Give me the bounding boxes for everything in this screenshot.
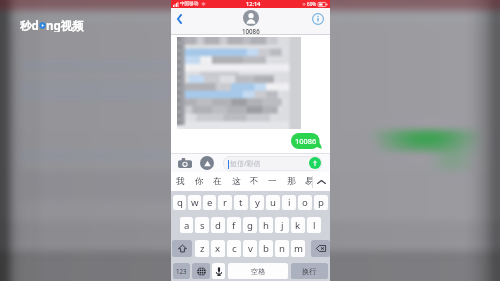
- button[interactable]: 一: [263, 172, 281, 191]
- staticText: 中国移动: [180, 1, 199, 7]
- button[interactable]: y: [250, 195, 264, 210]
- button[interactable]: e: [203, 195, 216, 210]
- staticText: u: [270, 196, 276, 209]
- staticText: 那: [287, 176, 296, 187]
- staticText: ng视频: [46, 18, 84, 32]
- button[interactable]: Contact info: [308, 8, 328, 29]
- button[interactable]: 10086: [242, 10, 260, 35]
- staticText: 这: [232, 176, 241, 187]
- staticText: n: [279, 242, 285, 255]
- staticText: k: [295, 219, 301, 232]
- button[interactable]: 换行: [291, 263, 328, 279]
- staticText: e: [207, 196, 213, 209]
- staticText: h: [263, 219, 269, 232]
- button[interactable]: l: [307, 217, 321, 233]
- staticText: 易: [305, 176, 314, 187]
- staticText: 换行: [302, 267, 317, 276]
- button[interactable]: 不: [245, 172, 263, 191]
- staticText: 60%: [307, 1, 317, 7]
- button[interactable]: u: [266, 195, 280, 210]
- staticText: m: [294, 242, 303, 255]
- staticText: 你: [195, 176, 204, 187]
- staticText: z: [200, 242, 205, 255]
- button[interactable]: 易: [300, 172, 318, 191]
- button[interactable]: Switch keyboard: [192, 263, 210, 279]
- button[interactable]: w: [188, 195, 201, 210]
- button[interactable]: App Store: [200, 156, 214, 170]
- staticText: w: [191, 196, 199, 209]
- staticText: 10086: [242, 27, 260, 35]
- staticText: i: [288, 196, 291, 209]
- button[interactable]: f: [227, 217, 241, 233]
- button[interactable]: Shift: [172, 240, 192, 257]
- staticText: o: [302, 196, 308, 209]
- button[interactable]: 这: [227, 172, 245, 191]
- button[interactable]: 我: [171, 172, 189, 191]
- button[interactable]: 123: [173, 263, 190, 279]
- button[interactable]: Send: [309, 157, 321, 169]
- button[interactable]: More candidates: [312, 172, 330, 191]
- staticText: 一: [268, 176, 277, 187]
- button[interactable]: 空格: [228, 263, 288, 279]
- staticText: 10086: [295, 136, 317, 146]
- button[interactable]: [177, 37, 301, 129]
- button[interactable]: j: [275, 217, 289, 233]
- staticText: t: [239, 196, 243, 209]
- button[interactable]: 你: [190, 172, 208, 191]
- staticText: s: [200, 219, 205, 232]
- button[interactable]: h: [259, 217, 273, 233]
- button[interactable]: o: [298, 195, 312, 210]
- button[interactable]: r: [218, 195, 232, 210]
- button[interactable]: q: [173, 195, 186, 210]
- button[interactable]: m: [291, 240, 305, 257]
- button[interactable]: 在: [208, 172, 226, 191]
- button[interactable]: g: [243, 217, 257, 233]
- button[interactable]: Back: [171, 8, 187, 30]
- staticText: c: [232, 242, 237, 255]
- staticText: 在: [213, 176, 222, 187]
- staticText: q: [177, 196, 183, 209]
- staticText: l: [313, 219, 316, 232]
- staticText: j: [281, 219, 284, 232]
- staticText: f: [232, 219, 236, 232]
- staticText: a: [184, 219, 190, 232]
- staticText: 空格: [251, 267, 266, 276]
- button[interactable]: k: [291, 217, 305, 233]
- button[interactable]: 短信/彩信: [223, 156, 322, 171]
- staticText: 不: [250, 176, 259, 187]
- button[interactable]: 10086: [291, 133, 320, 149]
- staticText: b: [263, 242, 269, 255]
- staticText: d: [215, 219, 221, 232]
- staticText: v: [248, 242, 253, 255]
- button[interactable]: c: [227, 240, 241, 257]
- staticText: x: [215, 242, 221, 255]
- staticText: 秒d: [20, 18, 39, 32]
- button[interactable]: i: [282, 195, 296, 210]
- button[interactable]: s: [195, 217, 209, 233]
- staticText: 12:14: [246, 0, 261, 8]
- button[interactable]: Backspace: [311, 240, 330, 257]
- staticText: r: [223, 196, 227, 209]
- button[interactable]: z: [195, 240, 209, 257]
- staticText: g: [247, 219, 253, 232]
- staticText: p: [318, 196, 324, 209]
- button[interactable]: a: [180, 217, 193, 233]
- button[interactable]: Dictation: [212, 263, 225, 279]
- button[interactable]: x: [211, 240, 225, 257]
- button[interactable]: t: [234, 195, 248, 210]
- button[interactable]: v: [243, 240, 257, 257]
- staticText: 123: [176, 267, 187, 275]
- button[interactable]: b: [259, 240, 273, 257]
- staticText: 短信/彩信: [230, 159, 261, 169]
- button[interactable]: Camera: [178, 157, 192, 169]
- button[interactable]: p: [314, 195, 328, 210]
- button[interactable]: d: [211, 217, 225, 233]
- staticText: y: [255, 196, 260, 209]
- button[interactable]: 那: [282, 172, 300, 191]
- button[interactable]: n: [275, 240, 289, 257]
- staticText: 我: [176, 176, 185, 187]
